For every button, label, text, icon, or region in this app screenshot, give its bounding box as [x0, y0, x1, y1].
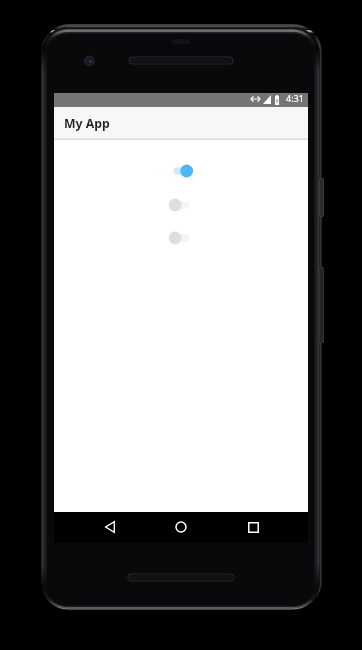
staticText: 4:31: [286, 92, 304, 104]
button[interactable]: Switch, off: [167, 197, 195, 213]
button[interactable]: Switch, on: [167, 163, 195, 179]
button[interactable]: Home: [164, 512, 198, 542]
button[interactable]: Recent apps: [236, 512, 270, 542]
button[interactable]: Switch, off: [167, 230, 195, 246]
staticText: My App: [64, 115, 110, 132]
button[interactable]: Back: [93, 512, 127, 542]
